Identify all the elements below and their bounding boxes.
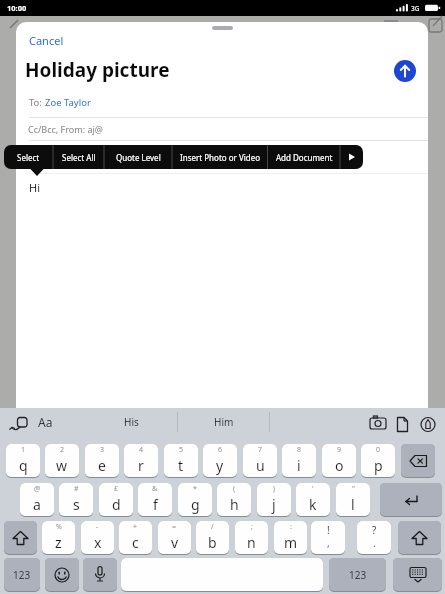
staticText: f: [153, 495, 158, 514]
button[interactable]: -: [81, 521, 114, 554]
staticText: ;: [251, 522, 253, 532]
button[interactable]: #: [59, 483, 93, 516]
button[interactable]: ': [296, 483, 330, 516]
staticText: m: [284, 533, 298, 552]
button[interactable]: His: [86, 408, 177, 436]
staticText: t: [178, 456, 184, 475]
button[interactable]: 123: [4, 558, 40, 591]
button[interactable]: Select: [4, 145, 53, 169]
staticText: (: [233, 484, 236, 494]
staticText: !: [327, 523, 330, 537]
staticText: o: [335, 456, 344, 475]
staticText: Zoe Taylor: [45, 96, 91, 109]
staticText: g: [191, 495, 200, 514]
button[interactable]: Add Document: [268, 145, 341, 169]
button[interactable]: Quote Level: [104, 145, 172, 169]
button[interactable]: [45, 558, 79, 591]
staticText: ,: [327, 536, 330, 550]
staticText: @: [34, 484, 41, 494]
button[interactable]: 7: [243, 444, 277, 477]
staticText: 6: [218, 445, 223, 455]
staticText: ): [273, 484, 276, 494]
button[interactable]: [340, 145, 363, 169]
staticText: Him: [214, 415, 234, 429]
staticText: 8: [297, 445, 302, 455]
staticText: -: [96, 522, 99, 532]
staticText: .: [373, 536, 376, 550]
staticText: n: [247, 533, 256, 552]
button[interactable]: Him: [178, 408, 269, 436]
staticText: Holiday picture: [25, 57, 170, 83]
button[interactable]: [401, 444, 435, 477]
button[interactable]: &: [138, 483, 172, 516]
button[interactable]: [398, 521, 441, 554]
button[interactable]: @: [20, 483, 54, 516]
button[interactable]: *: [178, 483, 212, 516]
button[interactable]: Cancel: [29, 33, 64, 48]
staticText: Select: [17, 152, 40, 163]
button[interactable]: 6: [203, 444, 237, 477]
staticText: /: [211, 522, 214, 532]
button[interactable]: Aa: [38, 414, 53, 430]
button[interactable]: /: [196, 521, 229, 554]
button[interactable]: =: [158, 521, 191, 554]
button[interactable]: !: [311, 521, 345, 554]
button[interactable]: Insert Photo or Video: [172, 145, 268, 169]
staticText: b: [208, 533, 217, 552]
staticText: ?: [372, 523, 377, 537]
staticText: 2: [60, 445, 65, 455]
staticText: 123: [13, 568, 31, 582]
button[interactable]: ": [336, 483, 370, 516]
staticText: =: [172, 522, 177, 532]
staticText: s: [73, 495, 80, 514]
staticText: 123: [349, 568, 367, 582]
button[interactable]: To:: [29, 96, 91, 109]
staticText: #: [74, 484, 79, 494]
staticText: 4: [139, 445, 144, 455]
staticText: 9: [337, 445, 342, 455]
button[interactable]: [121, 558, 323, 591]
button[interactable]: [4, 521, 37, 554]
staticText: l: [351, 495, 355, 514]
staticText: i: [297, 456, 301, 475]
button[interactable]: +: [119, 521, 152, 554]
staticText: &: [152, 484, 158, 494]
button[interactable]: 1: [6, 444, 40, 477]
staticText: e: [98, 456, 106, 475]
button[interactable]: %: [42, 521, 75, 554]
button[interactable]: (: [217, 483, 251, 516]
button[interactable]: 3: [85, 444, 119, 477]
staticText: *: [193, 484, 197, 494]
staticText: q: [19, 456, 28, 475]
button[interactable]: [380, 483, 442, 516]
staticText: Select All: [62, 152, 96, 163]
staticText: a: [33, 495, 41, 514]
button[interactable]: 0: [361, 444, 395, 477]
button[interactable]: Select All: [53, 145, 104, 169]
staticText: 3: [100, 445, 105, 455]
button[interactable]: 8: [282, 444, 316, 477]
button[interactable]: :: [274, 521, 307, 554]
button[interactable]: ): [257, 483, 291, 516]
button[interactable]: £: [99, 483, 133, 516]
staticText: %: [56, 522, 62, 532]
staticText: w: [56, 456, 68, 475]
staticText: y: [216, 456, 224, 475]
staticText: ': [312, 484, 314, 494]
button[interactable]: Cc/Bcc, From: aj@: [28, 123, 103, 135]
staticText: j: [272, 495, 276, 514]
button[interactable]: ;: [235, 521, 268, 554]
button[interactable]: [394, 60, 416, 82]
button[interactable]: 2: [45, 444, 79, 477]
button[interactable]: [393, 558, 442, 591]
staticText: Quote Level: [116, 152, 161, 163]
button[interactable]: 4: [124, 444, 158, 477]
button[interactable]: 9: [322, 444, 356, 477]
staticText: x: [94, 533, 102, 552]
staticText: +: [133, 522, 138, 532]
staticText: 1: [21, 445, 26, 455]
button[interactable]: 123: [329, 558, 386, 591]
button[interactable]: ?: [357, 521, 391, 554]
button[interactable]: [83, 558, 117, 591]
button[interactable]: 5: [164, 444, 198, 477]
